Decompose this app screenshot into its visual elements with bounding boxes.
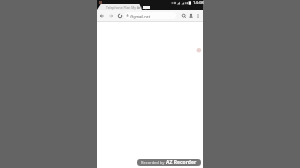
button[interactable]: Profile (188, 13, 194, 19)
staticText: Recorded by (141, 160, 165, 165)
staticText: x (137, 5, 139, 10)
button[interactable]: Back (99, 13, 105, 19)
staticText: i9gmail.net (130, 14, 151, 19)
staticText: AZ Recorder (166, 159, 197, 166)
other: Status icons (171, 1, 193, 5)
button[interactable]: Search (181, 13, 187, 19)
button[interactable]: i9gmail.net (124, 12, 176, 19)
staticText: 14:08 (193, 0, 204, 6)
button[interactable]: Browser tab (97, 4, 142, 10)
button[interactable]: Reload (117, 13, 123, 19)
button[interactable]: More options (195, 13, 201, 19)
staticText: Telephone Plan My Set-Up (106, 5, 148, 10)
button[interactable]: Forward (108, 13, 114, 19)
